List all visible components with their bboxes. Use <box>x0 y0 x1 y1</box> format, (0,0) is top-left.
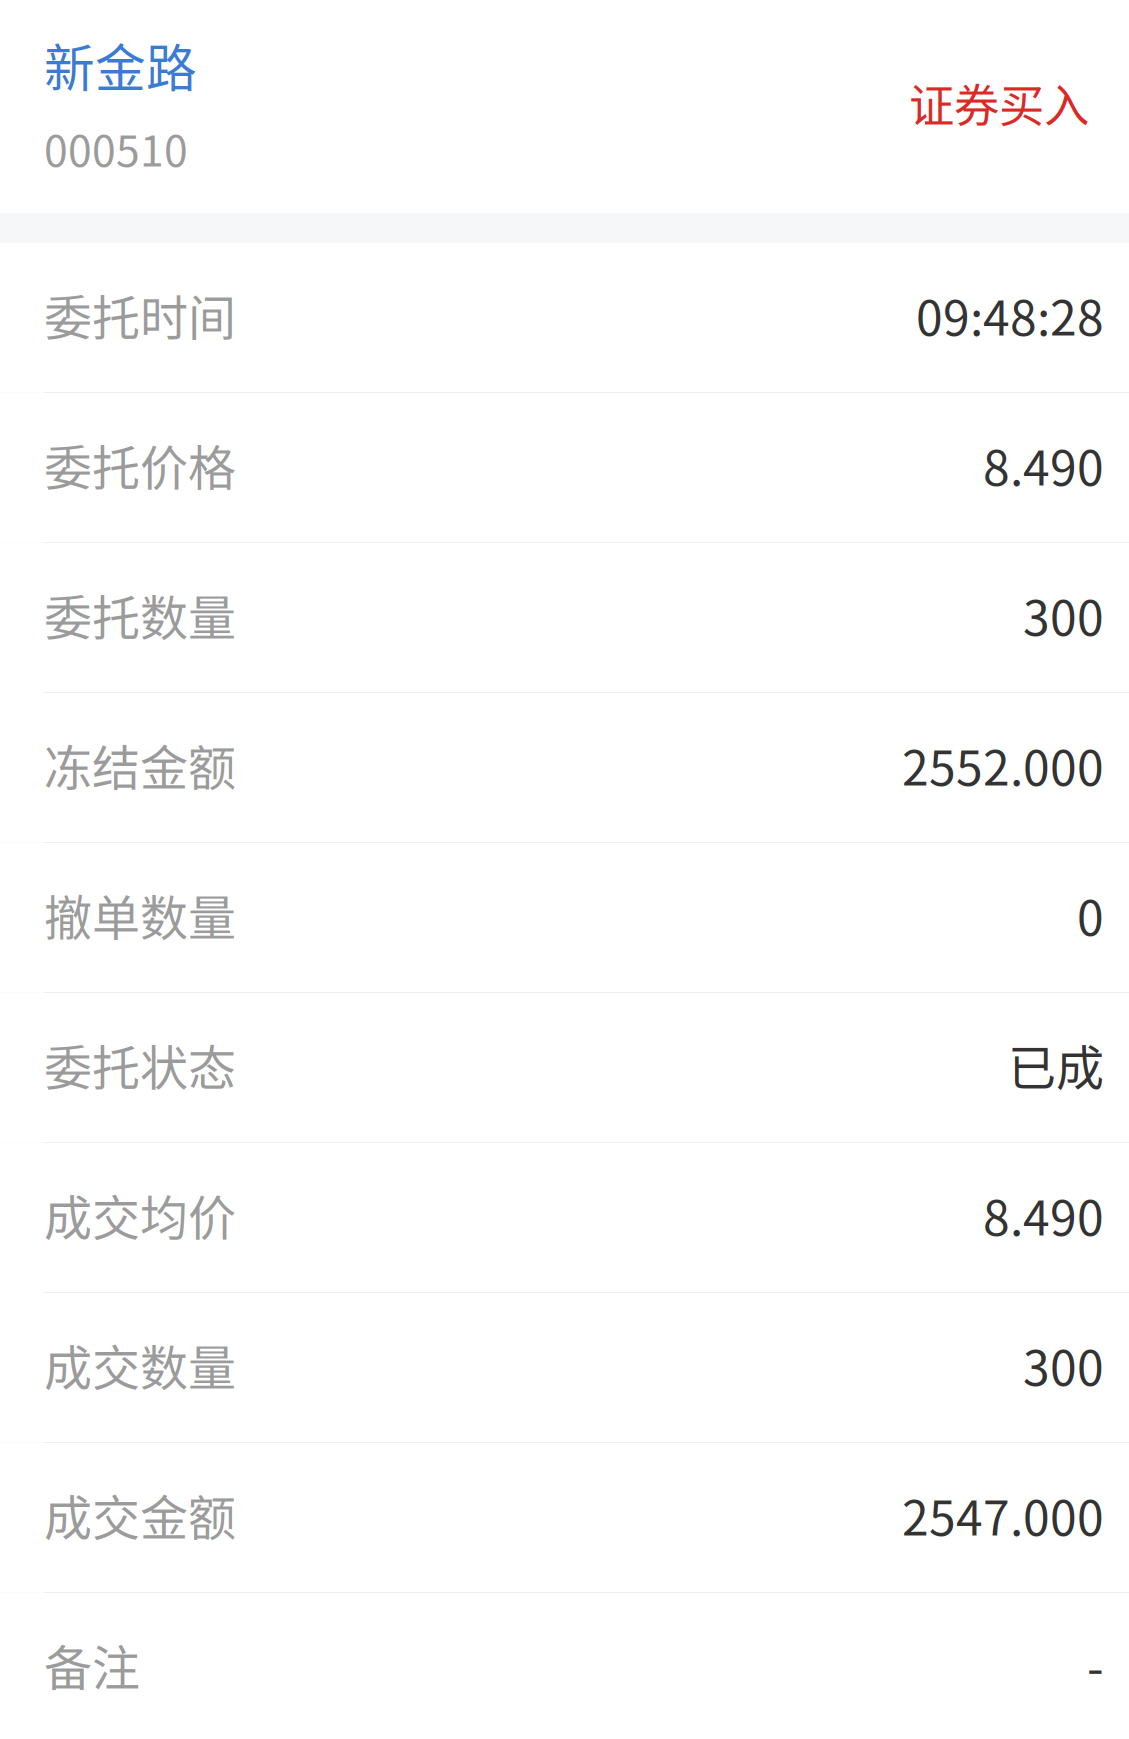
staticText: 冻结金额 <box>44 730 236 799</box>
staticText: 2547.000 <box>902 1480 1104 1549</box>
staticText: 委托数量 <box>44 580 236 649</box>
staticText: 成交金额 <box>44 1480 236 1549</box>
staticText: 0 <box>1077 880 1104 949</box>
staticText: 2552.000 <box>902 730 1104 799</box>
staticText: 成交均价 <box>44 1180 236 1249</box>
staticText: 委托状态 <box>44 1030 236 1099</box>
staticText: 撤单数量 <box>44 880 236 949</box>
staticText: 300 <box>1023 1330 1104 1399</box>
staticText: 8.490 <box>983 1180 1104 1249</box>
staticText: 000510 <box>44 117 188 179</box>
staticText: 证券买入 <box>909 70 1089 136</box>
staticText: 300 <box>1023 580 1104 649</box>
staticText: 已成 <box>1008 1030 1104 1099</box>
staticText: 成交数量 <box>44 1330 236 1399</box>
button[interactable]: 新金路 <box>44 34 197 172</box>
staticText: 委托价格 <box>44 430 236 499</box>
staticText: - <box>1087 1630 1104 1699</box>
staticText: 备注 <box>44 1630 140 1699</box>
staticText: 新金路 <box>44 28 197 102</box>
staticText: 8.490 <box>983 430 1104 499</box>
staticText: 09:48:28 <box>916 280 1104 349</box>
staticText: 委托时间 <box>44 280 236 349</box>
